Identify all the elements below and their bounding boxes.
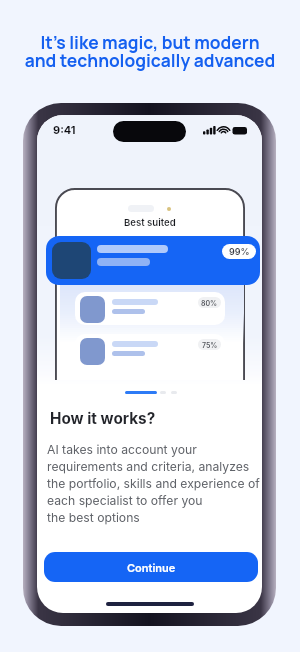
- staticText: 9:41: [53, 123, 76, 136]
- button[interactable]: 99%: [46, 236, 260, 285]
- button[interactable]: Continue: [44, 552, 258, 582]
- button[interactable]: 80%: [75, 292, 225, 325]
- staticText: AI takes into account your requirements …: [47, 442, 260, 525]
- staticText: 80%: [201, 299, 218, 307]
- staticText: 75%: [202, 341, 218, 349]
- staticText: Continue: [127, 561, 176, 574]
- staticText: Best suited: [124, 217, 176, 229]
- button[interactable]: 75%: [75, 334, 225, 367]
- staticText: How it works?: [50, 409, 156, 428]
- staticText: It's like magic, but modern and technolo…: [0, 30, 300, 72]
- staticText: 99%: [229, 246, 250, 257]
- other: Signal, Wi-Fi and battery status: [203, 124, 248, 136]
